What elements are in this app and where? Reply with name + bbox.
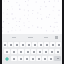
button[interactable] — [24, 56, 29, 61]
button[interactable] — [38, 34, 54, 41]
button[interactable] — [26, 42, 31, 47]
button[interactable] — [50, 42, 55, 47]
button[interactable] — [5, 34, 22, 41]
button[interactable] — [36, 56, 41, 61]
button[interactable] — [20, 42, 25, 47]
button[interactable] — [38, 42, 43, 47]
button[interactable] — [4, 49, 10, 54]
button[interactable] — [42, 56, 47, 61]
button[interactable] — [2, 0, 62, 34]
button[interactable] — [8, 42, 13, 47]
button[interactable] — [18, 49, 24, 54]
button[interactable] — [11, 56, 17, 61]
button[interactable] — [32, 42, 37, 47]
button[interactable] — [37, 49, 42, 54]
button[interactable] — [25, 49, 30, 54]
button[interactable]: Emoji — [3, 56, 10, 61]
button[interactable] — [30, 56, 35, 61]
button[interactable] — [56, 42, 61, 47]
button[interactable] — [48, 56, 53, 61]
button[interactable]: Keyboard settings — [54, 34, 59, 41]
button[interactable] — [18, 56, 23, 61]
button[interactable] — [55, 49, 60, 54]
button[interactable] — [44, 42, 49, 47]
button[interactable]: Backspace — [54, 56, 61, 61]
button[interactable] — [31, 49, 36, 54]
button[interactable] — [14, 42, 19, 47]
button[interactable] — [22, 34, 38, 41]
button[interactable] — [3, 42, 7, 47]
button[interactable] — [43, 49, 48, 54]
button[interactable] — [11, 49, 17, 54]
button[interactable] — [49, 49, 54, 54]
